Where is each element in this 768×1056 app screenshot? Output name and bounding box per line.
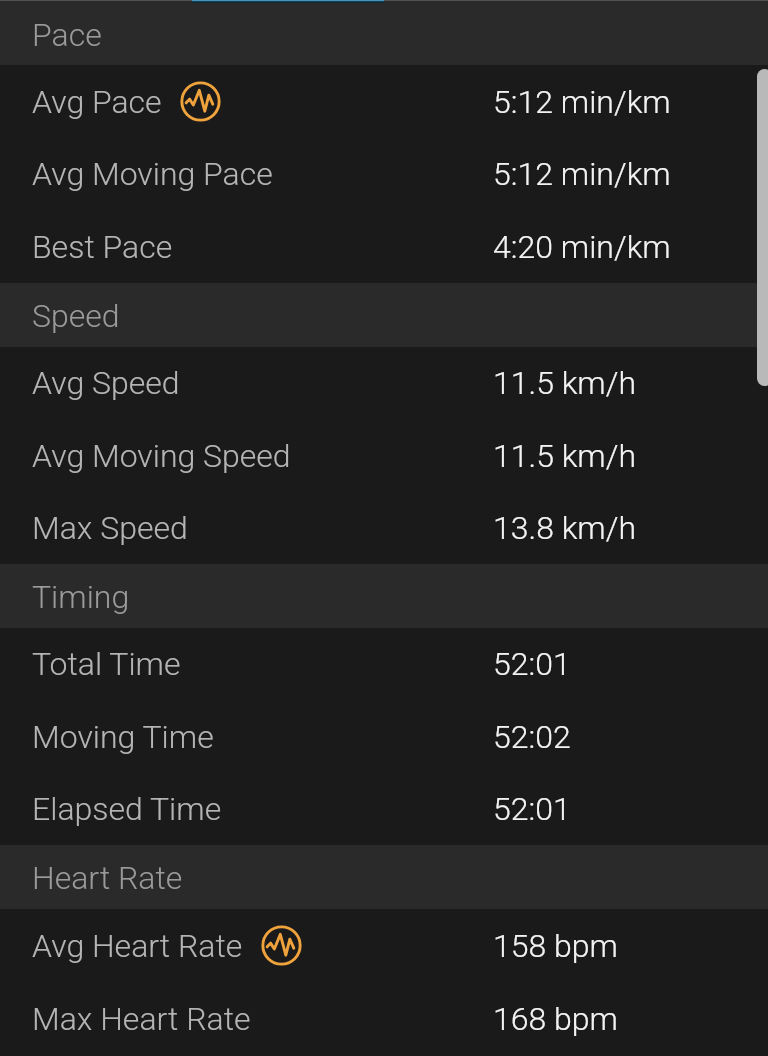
button[interactable]: Pace xyxy=(0,0,768,65)
button[interactable]: Heart Rate xyxy=(0,845,768,909)
button[interactable]: Total Time xyxy=(0,628,768,700)
button[interactable]: Max Speed xyxy=(0,492,768,564)
staticText: Total Time xyxy=(32,645,181,683)
button[interactable]: Speed xyxy=(0,283,768,347)
button[interactable]: Avg Moving Speed xyxy=(0,419,768,492)
button[interactable]: Avg Speed xyxy=(0,347,768,419)
staticText: 168 bpm xyxy=(493,1000,618,1038)
staticText: Moving Time xyxy=(32,718,214,756)
staticText: Avg Moving Speed xyxy=(32,437,291,475)
staticText: Avg Pace xyxy=(32,83,162,121)
staticText: Avg Speed xyxy=(32,364,180,402)
staticText: 5:12 min/km xyxy=(493,83,671,121)
staticText: Speed xyxy=(32,297,120,335)
staticText: 5:12 min/km xyxy=(493,155,671,193)
staticText: 158 bpm xyxy=(493,927,618,965)
staticText: 13.8 km/h xyxy=(493,509,636,547)
staticText: 52:02 xyxy=(493,718,571,756)
other: Activity chart xyxy=(261,925,302,966)
button[interactable]: Avg Heart Rate xyxy=(0,909,768,982)
staticText: Best Pace xyxy=(32,228,173,266)
button[interactable]: Elapsed Time xyxy=(0,773,768,845)
other: Activity chart xyxy=(180,81,221,122)
staticText: 52:01 xyxy=(493,790,571,828)
staticText: Max Heart Rate xyxy=(32,1000,251,1038)
button[interactable]: Avg Pace xyxy=(0,65,768,138)
staticText: Elapsed Time xyxy=(32,790,222,828)
staticText: 11.5 km/h xyxy=(493,437,636,475)
button[interactable]: Timing xyxy=(0,564,768,628)
staticText: Timing xyxy=(32,578,130,616)
staticText: Max Speed xyxy=(32,509,188,547)
button[interactable]: Avg Moving Pace xyxy=(0,138,768,210)
staticText: 4:20 min/km xyxy=(493,228,671,266)
staticText: Heart Rate xyxy=(32,859,183,897)
staticText: Avg Heart Rate xyxy=(32,927,243,965)
staticText: Pace xyxy=(32,16,102,54)
staticText: Avg Moving Pace xyxy=(32,155,273,193)
button[interactable]: Max Heart Rate xyxy=(0,982,768,1055)
staticText: 52:01 xyxy=(493,645,571,683)
button[interactable]: Moving Time xyxy=(0,700,768,773)
button[interactable]: Best Pace xyxy=(0,210,768,283)
staticText: 11.5 km/h xyxy=(493,364,636,402)
